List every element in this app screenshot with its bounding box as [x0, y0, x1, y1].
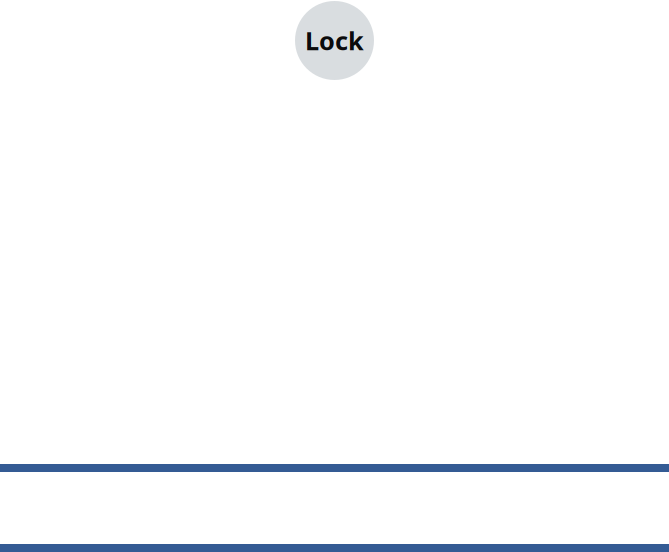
- button[interactable]: Lock: [295, 1, 374, 80]
- staticText: Lock: [305, 24, 364, 57]
